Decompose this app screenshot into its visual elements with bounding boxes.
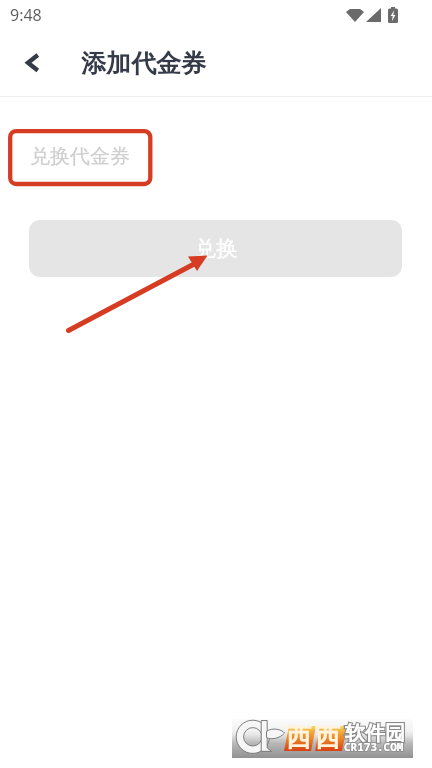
staticText: 西 [286, 722, 311, 753]
staticText: 添加代金券 [81, 48, 206, 79]
staticText: 兑换代金券 [30, 144, 130, 169]
staticText: 软件园 [345, 721, 405, 746]
button[interactable]: 兑换代金券 [10, 130, 151, 183]
staticText: 兑换 [194, 235, 238, 263]
staticText: CR173.COM [344, 739, 404, 754]
staticText: 西 [315, 722, 340, 753]
button[interactable]: 兑换 [29, 220, 402, 277]
staticText: CR173.COM [344, 739, 404, 754]
button[interactable]: Back [11, 42, 55, 86]
staticText: 9:48 [10, 4, 42, 26]
staticText: 软件园 [345, 721, 405, 746]
